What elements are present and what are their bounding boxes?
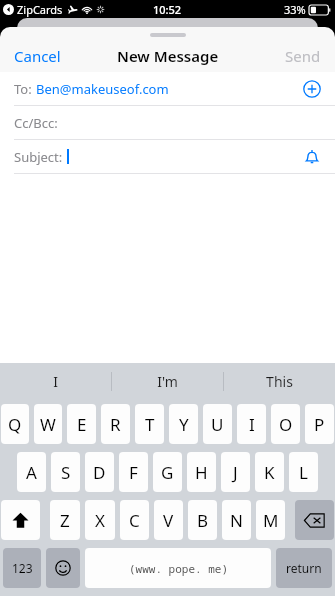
staticText: X (95, 509, 105, 532)
button[interactable]: Send (271, 40, 335, 72)
staticText: E (77, 413, 87, 436)
button[interactable]: A (17, 452, 46, 492)
button[interactable]: F (119, 452, 148, 492)
staticText: H (195, 461, 208, 484)
button[interactable]: E (67, 404, 96, 444)
staticText: New Message (117, 46, 219, 66)
button[interactable]: I'm (112, 363, 223, 400)
button[interactable]: R (101, 404, 130, 444)
button[interactable]: S (51, 452, 80, 492)
button[interactable]: 123 (3, 548, 41, 588)
staticText: 10:52 (153, 2, 182, 17)
staticText: C (129, 509, 140, 532)
staticText: return (286, 560, 322, 576)
staticText: ZipCards (17, 2, 63, 17)
button[interactable]: V (154, 500, 183, 540)
button[interactable]: C (120, 500, 149, 540)
staticText: B (197, 509, 209, 532)
button[interactable]: Q (1, 404, 29, 444)
staticText: Send (285, 46, 321, 66)
staticText: To: (14, 80, 36, 98)
button[interactable]: Y (169, 404, 198, 444)
staticText: Subject: (14, 148, 63, 166)
button[interactable]: P (305, 404, 334, 444)
button[interactable]: N (222, 500, 251, 540)
staticText: W (40, 413, 56, 436)
staticText: I (249, 413, 255, 436)
staticText: Y (179, 413, 189, 436)
staticText: S (61, 461, 71, 484)
staticText: 33% (284, 2, 306, 17)
button[interactable]: Notify me (299, 144, 325, 170)
staticText: F (129, 461, 138, 484)
button[interactable]: D (85, 452, 114, 492)
staticText: D (93, 461, 106, 484)
staticText: R (110, 413, 121, 436)
button[interactable]: H (187, 452, 216, 492)
staticText: J (233, 461, 238, 484)
staticText: This (266, 372, 293, 391)
staticText: K (264, 461, 275, 484)
button[interactable]: Space (85, 548, 271, 588)
staticText: Cancel (14, 46, 61, 66)
staticText: V (163, 509, 174, 532)
staticText: Z (60, 509, 70, 532)
button[interactable]: Add contact (299, 76, 325, 102)
button[interactable]: K (255, 452, 284, 492)
button[interactable]: U (203, 404, 232, 444)
staticText: Ben@makeuseof.com (36, 80, 169, 98)
button[interactable]: Subject: (0, 140, 335, 173)
button[interactable]: Z (50, 500, 80, 540)
staticText: I'm (157, 372, 178, 391)
button[interactable]: Shift (1, 500, 40, 540)
button[interactable]: T (135, 404, 164, 444)
button[interactable]: I (237, 404, 266, 444)
button[interactable]: I (0, 363, 111, 400)
button[interactable]: M (256, 500, 285, 540)
staticText: G (161, 461, 174, 484)
staticText: U (211, 413, 224, 436)
staticText: P (314, 413, 325, 436)
button[interactable]: return (276, 548, 332, 588)
button[interactable]: J (221, 452, 250, 492)
staticText: O (279, 413, 293, 436)
button[interactable]: B (188, 500, 217, 540)
button[interactable]: Cc/Bcc: (0, 106, 335, 139)
staticText: N (230, 509, 243, 532)
button[interactable]: To: (0, 72, 335, 105)
button[interactable]: W (34, 404, 62, 444)
staticText: Cc/Bcc: (14, 114, 58, 132)
staticText: 123 (12, 560, 33, 576)
staticText: L (299, 461, 308, 484)
button[interactable]: L (289, 452, 318, 492)
staticText: I (53, 372, 58, 391)
button[interactable]: O (271, 404, 300, 444)
button[interactable]: X (85, 500, 115, 540)
button[interactable]: Backspace (295, 500, 334, 540)
staticText: A (26, 461, 37, 484)
staticText: T (145, 413, 155, 436)
button[interactable]: Cancel (0, 40, 75, 72)
button[interactable]: Emoji (46, 548, 80, 588)
button[interactable]: This (224, 363, 335, 400)
staticText: Q (8, 413, 22, 436)
staticText: (www. pope. me) (129, 561, 228, 576)
button[interactable]: G (153, 452, 182, 492)
staticText: M (263, 509, 279, 532)
